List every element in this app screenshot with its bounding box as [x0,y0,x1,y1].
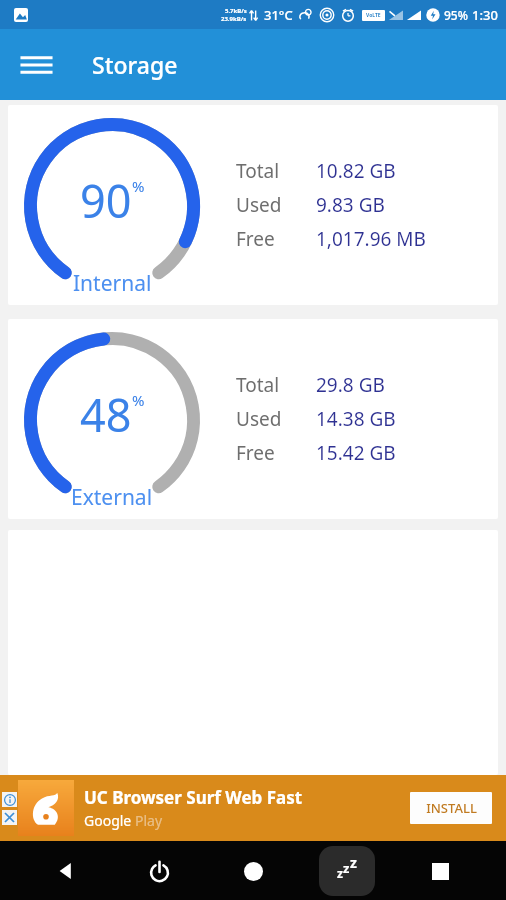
staticText: External [71,483,153,512]
button[interactable]: Power [131,843,187,899]
staticText: VoLTE [366,12,381,19]
staticText: z [343,859,350,877]
staticText: Free [236,440,275,466]
staticText: Play [135,811,163,830]
staticText: 15.42 GB [316,440,396,466]
staticText: 10.82 GB [316,158,396,184]
staticText: 1:30 [472,6,498,24]
staticText: 9.83 GB [316,192,385,218]
staticText: Total [236,158,280,184]
staticText: Used [236,406,282,432]
staticText: Storage [92,49,178,80]
staticText: 5.7kB/s [225,7,247,15]
button[interactable]: Home [225,843,281,899]
staticText: 95% [444,7,468,23]
staticText: 29.8 GB [316,372,385,398]
button[interactable]: Back [38,843,94,899]
button[interactable]: Close ad [2,810,17,825]
staticText: 31°C [264,6,293,24]
button[interactable]: Ad info [0,775,506,841]
staticText: 90 [80,170,132,231]
button[interactable]: Ad info [2,792,17,807]
staticText: 48 [80,384,132,445]
button[interactable]: Recent apps [412,843,468,899]
staticText: Used [236,192,282,218]
button[interactable]: Sleep [319,846,375,896]
button[interactable]: INSTALL [410,792,492,824]
staticText: INSTALL [426,799,477,817]
staticText: Internal [73,269,152,298]
staticText: 14.38 GB [316,406,396,432]
button[interactable]: Open navigation menu [10,39,62,91]
staticText: Free [236,226,275,252]
staticText: % [132,176,145,196]
staticText: z [337,865,343,881]
staticText: z [350,853,357,872]
staticText: 1,017.96 MB [316,226,426,252]
staticText: Google [84,811,135,830]
staticText: % [132,390,145,410]
button[interactable]: 90 [8,105,498,305]
staticText: Total [236,372,280,398]
button[interactable]: 48 [8,319,498,519]
staticText: UC Browser Surf Web Fast [84,786,303,809]
staticText: 23.9kB/s [221,15,247,23]
